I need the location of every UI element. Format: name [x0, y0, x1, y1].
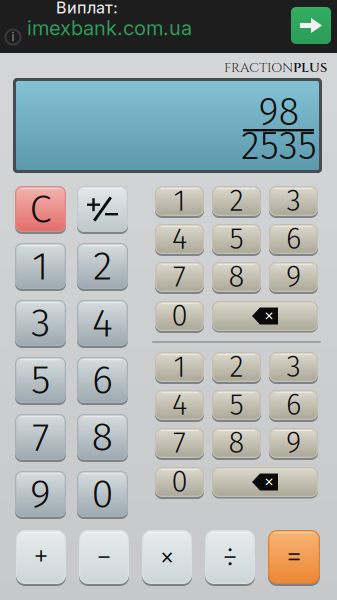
- button[interactable]: 7: [15, 414, 66, 460]
- staticText: 4: [92, 299, 113, 347]
- button[interactable]: 2: [212, 186, 261, 216]
- button[interactable]: 5: [212, 224, 261, 254]
- staticText: −: [96, 539, 111, 575]
- button[interactable]: 4: [155, 224, 204, 254]
- staticText: 5: [31, 356, 50, 404]
- button[interactable]: 2: [212, 352, 261, 382]
- button[interactable]: 5: [15, 357, 66, 403]
- staticText: PLUS: [293, 59, 327, 77]
- button[interactable]: C: [15, 186, 66, 232]
- staticText: +: [33, 539, 48, 575]
- button[interactable]: 1: [155, 186, 204, 216]
- button[interactable]: +: [16, 530, 66, 584]
- staticText: ✕: [264, 475, 274, 489]
- button[interactable]: 9: [269, 262, 318, 292]
- button[interactable]: ×: [142, 530, 192, 584]
- staticText: 2535: [241, 123, 317, 169]
- staticText: 1: [173, 349, 185, 385]
- button[interactable]: 4: [77, 300, 128, 346]
- staticText: 6: [286, 387, 301, 423]
- staticText: 5: [229, 221, 243, 257]
- button[interactable]: 9: [269, 428, 318, 458]
- button[interactable]: 0: [155, 467, 204, 497]
- staticText: 9: [286, 259, 301, 295]
- staticText: 1: [32, 242, 49, 290]
- button[interactable]: 3: [15, 300, 66, 346]
- staticText: 8: [91, 413, 113, 461]
- staticText: 5: [229, 387, 243, 423]
- button[interactable]: 3: [269, 186, 318, 216]
- button[interactable]: 5: [212, 390, 261, 420]
- staticText: 7: [173, 425, 186, 461]
- staticText: =: [286, 539, 301, 575]
- button[interactable]: Page info: [2, 26, 24, 48]
- button[interactable]: −: [79, 530, 129, 584]
- button[interactable]: 0: [77, 471, 128, 517]
- button[interactable]: 8: [212, 262, 261, 292]
- button[interactable]: ÷: [205, 530, 255, 584]
- staticText: 6: [286, 221, 301, 257]
- button[interactable]: 9: [15, 471, 66, 517]
- button[interactable]: =: [268, 530, 320, 584]
- staticText: 98: [258, 89, 299, 135]
- staticText: 2: [93, 242, 112, 290]
- staticText: 0: [171, 298, 187, 334]
- staticText: 6: [92, 356, 113, 404]
- staticText: 3: [31, 299, 50, 347]
- button[interactable]: Backspace: [212, 300, 318, 332]
- button[interactable]: 7: [155, 428, 204, 458]
- staticText: C: [29, 185, 51, 233]
- staticText: 4: [172, 221, 187, 257]
- button[interactable]: 8: [212, 428, 261, 458]
- staticText: 3: [286, 183, 300, 219]
- button[interactable]: [77, 186, 128, 232]
- button[interactable]: 6: [269, 224, 318, 254]
- button[interactable]: 1: [15, 243, 66, 289]
- staticText: 2: [229, 183, 243, 219]
- button[interactable]: 1: [155, 352, 204, 382]
- staticText: FRACTION: [224, 59, 293, 77]
- staticText: Виплат:: [56, 0, 118, 17]
- button[interactable]: 6: [77, 357, 128, 403]
- button[interactable]: 4: [155, 390, 204, 420]
- button[interactable]: Backspace: [212, 466, 318, 498]
- button[interactable]: 0: [155, 301, 204, 331]
- staticText: 3: [286, 349, 300, 385]
- staticText: 7: [32, 413, 49, 461]
- staticText: 1: [173, 183, 185, 219]
- staticText: 4: [172, 387, 187, 423]
- button[interactable]: Go: [291, 7, 331, 44]
- button[interactable]: 3: [269, 352, 318, 382]
- staticText: ✕: [264, 309, 274, 323]
- staticText: 0: [171, 464, 187, 500]
- staticText: imexbank.com.ua: [27, 16, 192, 40]
- staticText: ÷: [222, 539, 237, 575]
- staticText: 9: [30, 470, 51, 518]
- button[interactable]: imexbank.com.ua: [27, 16, 192, 40]
- staticText: i: [11, 30, 14, 44]
- button[interactable]: 2: [77, 243, 128, 289]
- staticText: ×: [159, 539, 174, 575]
- staticText: 8: [228, 425, 244, 461]
- staticText: 2: [229, 349, 243, 385]
- staticText: 7: [173, 259, 186, 295]
- staticText: 8: [228, 259, 244, 295]
- staticText: 0: [91, 470, 113, 518]
- button[interactable]: 6: [269, 390, 318, 420]
- button[interactable]: 7: [155, 262, 204, 292]
- staticText: 9: [286, 425, 301, 461]
- button[interactable]: 8: [77, 414, 128, 460]
